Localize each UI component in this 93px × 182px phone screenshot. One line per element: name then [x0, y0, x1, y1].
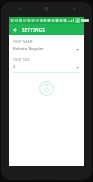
button[interactable]: Navigate up — [9, 24, 20, 35]
button[interactable]: FONT SIZE — [9, 58, 84, 73]
staticText: FONT NAME — [13, 40, 33, 44]
button[interactable]: SETTINGS — [22, 24, 45, 35]
staticText: FONT SIZE — [13, 58, 30, 62]
staticText: Roboto Regular — [13, 46, 75, 52]
staticText: SETTINGS — [22, 27, 45, 33]
other: Open FONT SIZE dropdown — [75, 65, 80, 70]
staticText: 2 — [13, 64, 75, 70]
other: Open FONT NAME dropdown — [75, 47, 80, 52]
button[interactable]: FONT NAME — [9, 40, 84, 54]
